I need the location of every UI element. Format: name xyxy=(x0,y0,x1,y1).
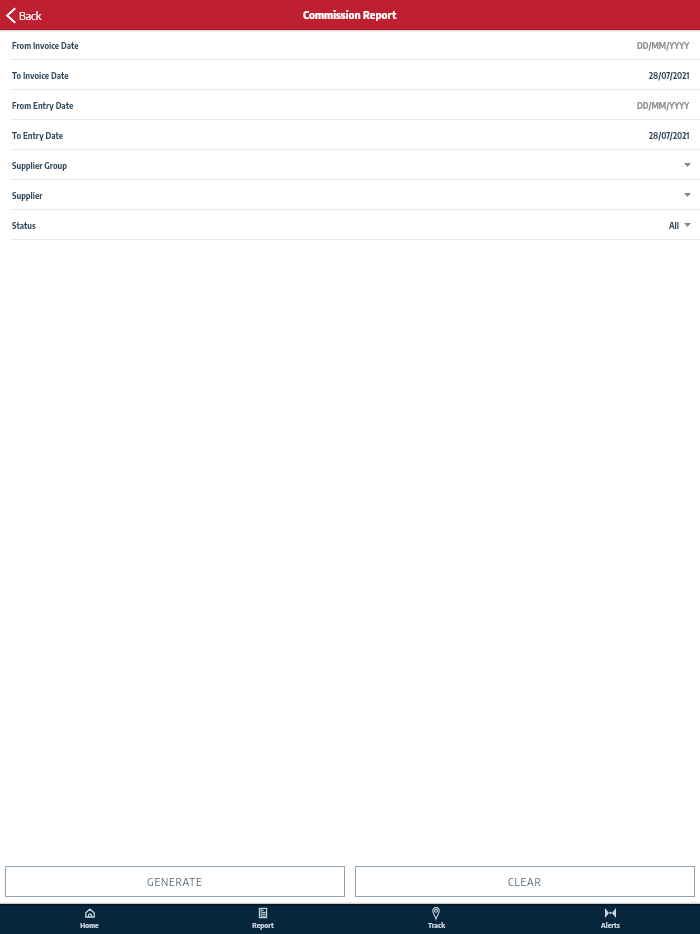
staticText: Alerts xyxy=(601,921,620,930)
staticText: DD/MM/YYYY xyxy=(637,100,690,110)
button[interactable]: From Invoice Date xyxy=(0,30,700,59)
staticText: From Entry Date xyxy=(12,100,74,110)
button[interactable]: To Entry Date xyxy=(0,120,700,149)
staticText: CLEAR xyxy=(508,875,542,888)
button[interactable]: CLEAR xyxy=(355,866,695,897)
other: Open Supplier Group list xyxy=(684,163,691,167)
staticText: To Invoice Date xyxy=(12,70,69,80)
button[interactable]: Home xyxy=(3,904,176,934)
other: Open Supplier list xyxy=(684,193,691,197)
other: Open Status list xyxy=(684,223,691,227)
staticText: 28/07/2021 xyxy=(649,130,690,140)
button[interactable]: GENERATE xyxy=(5,866,345,897)
staticText: GENERATE xyxy=(147,875,203,888)
staticText: DD/MM/YYYY xyxy=(637,40,690,50)
staticText: Track xyxy=(428,921,445,930)
button[interactable]: Track xyxy=(349,904,523,934)
button[interactable]: From Entry Date xyxy=(0,90,700,119)
staticText: Commission Report xyxy=(303,8,397,21)
other: Back xyxy=(6,8,15,23)
button[interactable]: Supplier Group xyxy=(0,150,700,179)
staticText: 28/07/2021 xyxy=(649,70,690,80)
staticText: Report xyxy=(252,921,274,930)
button[interactable]: Alerts xyxy=(523,904,697,934)
button[interactable]: Supplier xyxy=(0,180,700,209)
staticText: Home xyxy=(80,921,99,930)
staticText: To Entry Date xyxy=(12,130,64,140)
staticText: All xyxy=(669,220,679,230)
staticText: Back xyxy=(19,8,42,22)
button[interactable]: Back xyxy=(0,0,50,30)
staticText: Supplier Group xyxy=(12,160,67,170)
staticText: From Invoice Date xyxy=(12,40,79,50)
button[interactable]: Status xyxy=(0,210,700,239)
staticText: Status xyxy=(12,220,36,230)
button[interactable]: To Invoice Date xyxy=(0,60,700,89)
button[interactable]: Report xyxy=(176,904,349,934)
staticText: Supplier xyxy=(12,190,43,200)
